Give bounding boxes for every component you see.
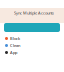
button[interactable]: App <box>0 49 64 56</box>
staticText: Block <box>10 36 20 41</box>
staticText: Sync Multiple Accounts <box>14 10 54 16</box>
button[interactable]: Block <box>0 35 64 42</box>
staticText: App <box>10 50 17 55</box>
button[interactable]: Clean <box>0 42 64 49</box>
staticText: Clean <box>10 43 20 48</box>
